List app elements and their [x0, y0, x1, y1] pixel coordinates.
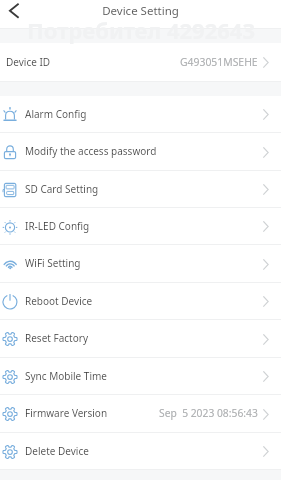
button[interactable]: Reset Factory	[0, 320, 281, 358]
staticText: Reboot Device	[25, 294, 93, 308]
button[interactable]: WiFi Setting	[0, 245, 281, 283]
button[interactable]: Delete Device	[0, 433, 281, 470]
staticText: Firmware Version	[25, 406, 108, 420]
button[interactable]: Alarm Config	[0, 96, 281, 133]
staticText: WiFi Setting	[25, 256, 81, 270]
button[interactable]: Sync Mobile Time	[0, 358, 281, 395]
button[interactable]: Reboot Device	[0, 283, 281, 320]
staticText: G493051MSEHE	[180, 55, 258, 69]
button[interactable]: Firmware Version	[0, 395, 281, 433]
staticText: IR-LED Config	[25, 219, 90, 233]
staticText: SD Card Setting	[25, 182, 99, 196]
button[interactable]: Back	[0, 0, 28, 22]
staticText: Потребител 4292643	[27, 15, 255, 45]
staticText: Delete Device	[25, 444, 89, 458]
button[interactable]: SD Card Setting	[0, 171, 281, 208]
staticText: Reset Factory	[25, 331, 88, 345]
button[interactable]: Device ID	[0, 43, 281, 82]
staticText: Device ID	[6, 55, 51, 69]
button[interactable]: Modify the access password	[0, 133, 281, 171]
staticText: Sync Mobile Time	[25, 369, 107, 383]
staticText: Sep 5 2023 08:56:43	[159, 406, 258, 420]
staticText: Alarm Config	[25, 107, 87, 121]
staticText: Device Setting	[102, 3, 179, 19]
staticText: Modify the access password	[25, 144, 157, 158]
button[interactable]: IR-LED Config	[0, 208, 281, 245]
